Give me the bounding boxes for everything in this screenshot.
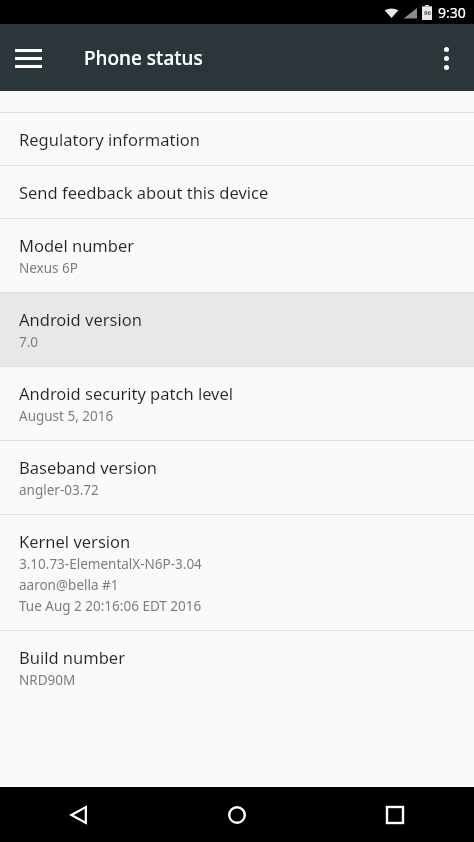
staticText: Build number (19, 646, 125, 668)
staticText: Android version (19, 308, 142, 330)
button[interactable]: Recent apps (316, 787, 474, 842)
staticText: August 5, 2016 (19, 407, 114, 425)
button[interactable]: Home (158, 787, 316, 842)
staticText: Baseband version (19, 456, 158, 478)
button[interactable]: Open navigation drawer (0, 30, 56, 86)
button[interactable]: Build number (0, 631, 474, 704)
button[interactable]: Android version (0, 293, 474, 366)
button[interactable]: Model number (0, 219, 474, 292)
staticText: Kernel version (19, 530, 131, 552)
staticText: Nexus 6P (19, 259, 78, 277)
button[interactable]: Send feedback about this device (0, 166, 474, 218)
staticText: NRD90M (19, 671, 76, 689)
button[interactable]: Back (0, 787, 158, 842)
button[interactable]: Kernel version (0, 515, 474, 630)
staticText: Phone status (84, 45, 203, 71)
staticText: Android security patch level (19, 382, 234, 404)
button[interactable]: Android security patch level (0, 367, 474, 440)
staticText: Regulatory information (19, 128, 200, 150)
staticText: angler-03.72 (19, 481, 99, 499)
staticText: Tue Aug 2 20:16:06 EDT 2016 (19, 597, 202, 615)
staticText: 7.0 (19, 333, 39, 351)
staticText: 3.10.73-ElementalX-N6P-3.04 (19, 555, 202, 573)
button[interactable]: Baseband version (0, 441, 474, 514)
staticText: Send feedback about this device (19, 181, 269, 203)
button[interactable]: Regulatory information (0, 113, 474, 165)
staticText: aaron@bella #1 (19, 576, 119, 594)
staticText: 9:30 (438, 3, 466, 22)
staticText: 96 (424, 9, 431, 17)
staticText: Model number (19, 234, 135, 256)
button[interactable]: More options (418, 30, 474, 86)
